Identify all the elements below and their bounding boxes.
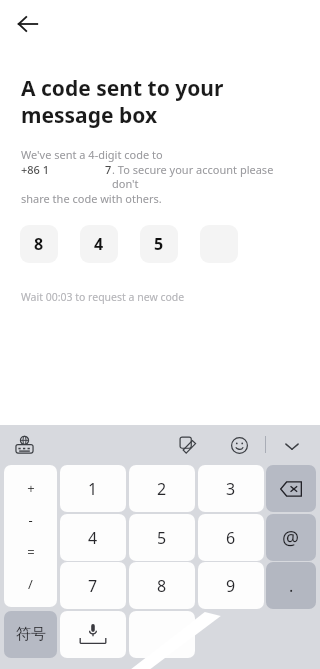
staticText: = <box>27 543 35 561</box>
staticText: - <box>28 511 33 529</box>
staticText: 8 <box>157 575 167 597</box>
staticText: + <box>27 479 35 497</box>
staticText: share the code with others. <box>21 191 162 206</box>
button[interactable]: 7 <box>60 562 126 609</box>
staticText: @ <box>282 525 300 551</box>
button[interactable]: Backspace <box>266 465 316 512</box>
button[interactable]: 符号 <box>4 611 57 658</box>
button[interactable]: Switch keyboard language <box>12 433 36 457</box>
button[interactable]: 9 <box>198 562 264 609</box>
staticText: 2 <box>157 478 167 500</box>
staticText: +86 1 <box>21 162 50 177</box>
button[interactable]: . <box>266 562 316 609</box>
staticText: 3 <box>226 478 236 500</box>
button[interactable]: 3 <box>198 465 264 512</box>
button[interactable]: 4 <box>60 514 126 561</box>
staticText: 1 <box>88 478 98 500</box>
button[interactable]: Emoji <box>227 433 251 457</box>
button[interactable]: 2 <box>129 465 195 512</box>
button[interactable]: 8 <box>20 225 58 263</box>
staticText: 8 <box>34 233 44 255</box>
button[interactable]: AI writing <box>176 433 200 457</box>
staticText: 符号 <box>16 625 46 644</box>
staticText: 5 <box>154 233 164 255</box>
button[interactable]: 5 <box>129 514 195 561</box>
staticText: . To secure your account please don't <box>112 162 302 191</box>
staticText: 4 <box>94 233 104 255</box>
staticText: 5 <box>157 527 167 549</box>
staticText: 7 <box>88 575 98 597</box>
staticText: 9 <box>226 575 236 597</box>
staticText: We've sent a 4-digit code to <box>21 147 163 162</box>
staticText: . <box>289 575 294 597</box>
button[interactable]: 4 <box>80 225 118 263</box>
button[interactable]: Hide keyboard <box>279 433 305 459</box>
button[interactable]: 1 <box>60 465 126 512</box>
button[interactable]: 5 <box>140 225 178 263</box>
button[interactable]: Back <box>8 4 48 44</box>
button[interactable]: Space <box>129 611 195 658</box>
button[interactable]: 6 <box>198 514 264 561</box>
staticText: 4 <box>88 527 98 549</box>
button[interactable]: Wait 00:03 to request a new code <box>21 290 185 304</box>
button[interactable]: @ <box>266 514 316 561</box>
button[interactable]: Space, voice input <box>60 611 126 658</box>
staticText: / <box>28 575 33 593</box>
staticText: 6 <box>226 527 236 549</box>
staticText: A code sent to your message box <box>21 74 224 129</box>
staticText: 7 <box>105 162 112 177</box>
button[interactable]: 8 <box>129 562 195 609</box>
button[interactable]: Symbols plus minus equals slash <box>4 465 57 607</box>
